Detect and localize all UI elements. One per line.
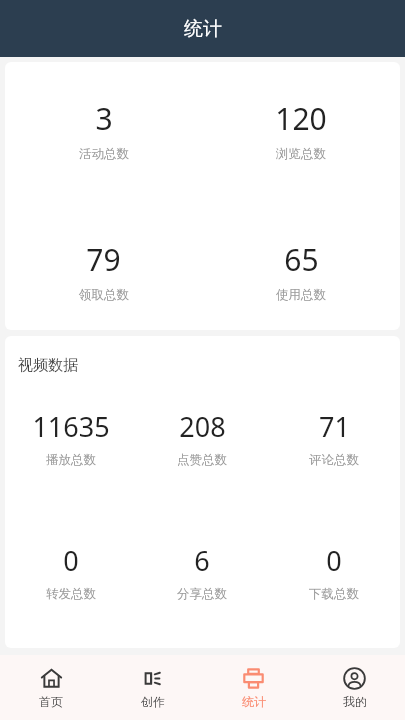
staticText: 统计 [184, 17, 222, 41]
staticText: 播放总数 [46, 452, 96, 468]
staticText: 活动总数 [79, 146, 129, 162]
staticText: 首页 [39, 694, 63, 709]
button[interactable]: 120 [202, 98, 400, 162]
button[interactable]: 11635 [5, 408, 136, 468]
button[interactable]: 0 [268, 542, 400, 602]
staticText: 浏览总数 [276, 146, 326, 162]
staticText: 11635 [32, 408, 110, 445]
staticText: 转发总数 [46, 586, 96, 602]
staticText: 统计 [242, 694, 266, 709]
staticText: 3 [95, 98, 113, 139]
staticText: 分享总数 [177, 586, 227, 602]
staticText: 120 [275, 98, 327, 139]
button[interactable]: 79 [5, 239, 202, 303]
staticText: 6 [194, 542, 210, 579]
button[interactable]: 首页 [0, 667, 102, 709]
staticText: 下载总数 [309, 586, 359, 602]
button[interactable]: 6 [136, 542, 268, 602]
staticText: 208 [179, 408, 226, 445]
staticText: 点赞总数 [177, 452, 227, 468]
button[interactable]: 71 [268, 408, 400, 468]
staticText: 使用总数 [276, 287, 326, 303]
button[interactable]: 0 [5, 542, 136, 602]
button[interactable]: 208 [136, 408, 268, 468]
staticText: 评论总数 [309, 452, 359, 468]
button[interactable]: 我的 [304, 667, 405, 709]
staticText: 视频数据 [18, 356, 78, 375]
staticText: 79 [86, 239, 121, 280]
staticText: 创作 [141, 694, 165, 709]
staticText: 我的 [343, 694, 367, 709]
button[interactable]: 统计 [203, 667, 304, 709]
button[interactable]: 创作 [102, 667, 203, 709]
staticText: 0 [63, 542, 79, 579]
staticText: 0 [326, 542, 342, 579]
staticText: 71 [319, 408, 350, 445]
staticText: 领取总数 [79, 287, 129, 303]
button[interactable]: 3 [5, 98, 202, 162]
button[interactable]: 65 [202, 239, 400, 303]
staticText: 65 [284, 239, 319, 280]
